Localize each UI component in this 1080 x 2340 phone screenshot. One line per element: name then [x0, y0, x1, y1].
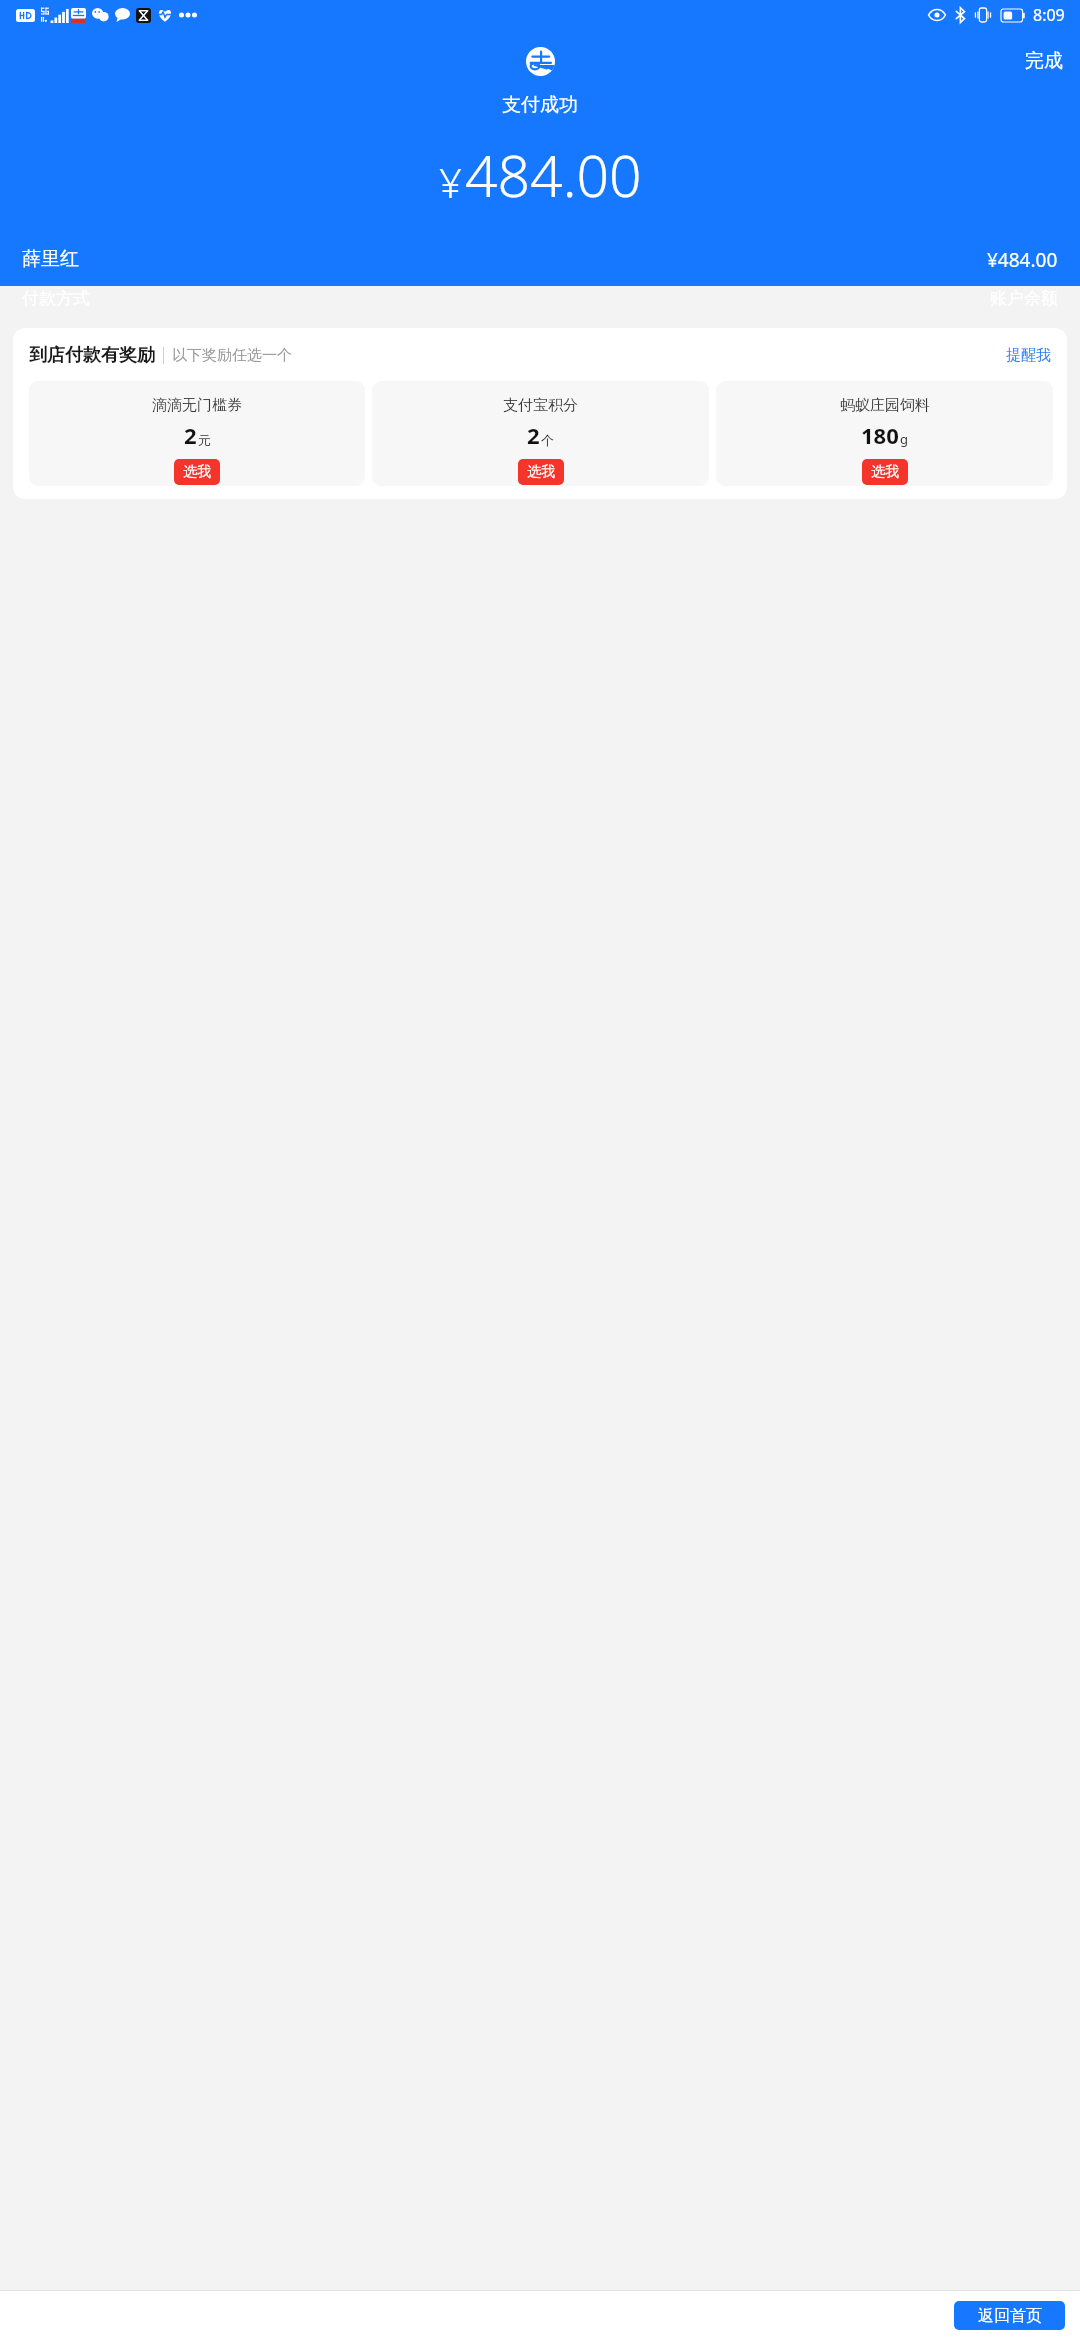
- staticText: 支付成功: [502, 93, 578, 117]
- staticText: 付款方式: [22, 288, 90, 309]
- staticText: 180: [861, 420, 899, 450]
- button[interactable]: 选我: [862, 459, 908, 485]
- button[interactable]: 选我: [174, 459, 220, 485]
- staticText: 滴滴无门槛券: [152, 396, 242, 415]
- button[interactable]: 返回首页: [954, 2301, 1065, 2330]
- staticText: g: [900, 430, 908, 448]
- button[interactable]: Alipay logo: [526, 47, 555, 76]
- staticText: 薛里红: [22, 247, 79, 271]
- staticText: 2: [527, 420, 540, 450]
- staticText: 以下奖励任选一个: [172, 346, 292, 365]
- button[interactable]: 选我: [518, 459, 564, 485]
- staticText: 选我: [183, 463, 211, 481]
- staticText: 选我: [871, 463, 899, 481]
- staticText: 484.00: [465, 136, 642, 214]
- staticText: 提醒我: [1006, 346, 1051, 365]
- staticText: 账户余额: [990, 288, 1058, 309]
- staticText: 返回首页: [978, 2306, 1042, 2326]
- staticText: 元: [198, 432, 211, 448]
- button[interactable]: 滴滴无门槛券: [29, 381, 365, 486]
- button[interactable]: 完成: [1008, 39, 1080, 83]
- staticText: 个: [541, 432, 554, 448]
- button[interactable]: 支付宝积分: [372, 381, 709, 486]
- staticText: 到店付款有奖励: [29, 344, 155, 367]
- staticText: 完成: [1025, 49, 1063, 73]
- staticText: 蚂蚁庄园饲料: [840, 396, 930, 415]
- staticText: 选我: [527, 463, 555, 481]
- staticText: 8:09: [1033, 4, 1065, 26]
- button[interactable]: 蚂蚁庄园饲料: [716, 381, 1053, 486]
- staticText: ¥484.00: [987, 247, 1058, 273]
- button[interactable]: 提醒我: [1004, 341, 1053, 370]
- staticText: 支付宝积分: [503, 396, 578, 415]
- staticText: 2: [184, 420, 197, 450]
- staticText: ¥: [439, 155, 462, 209]
